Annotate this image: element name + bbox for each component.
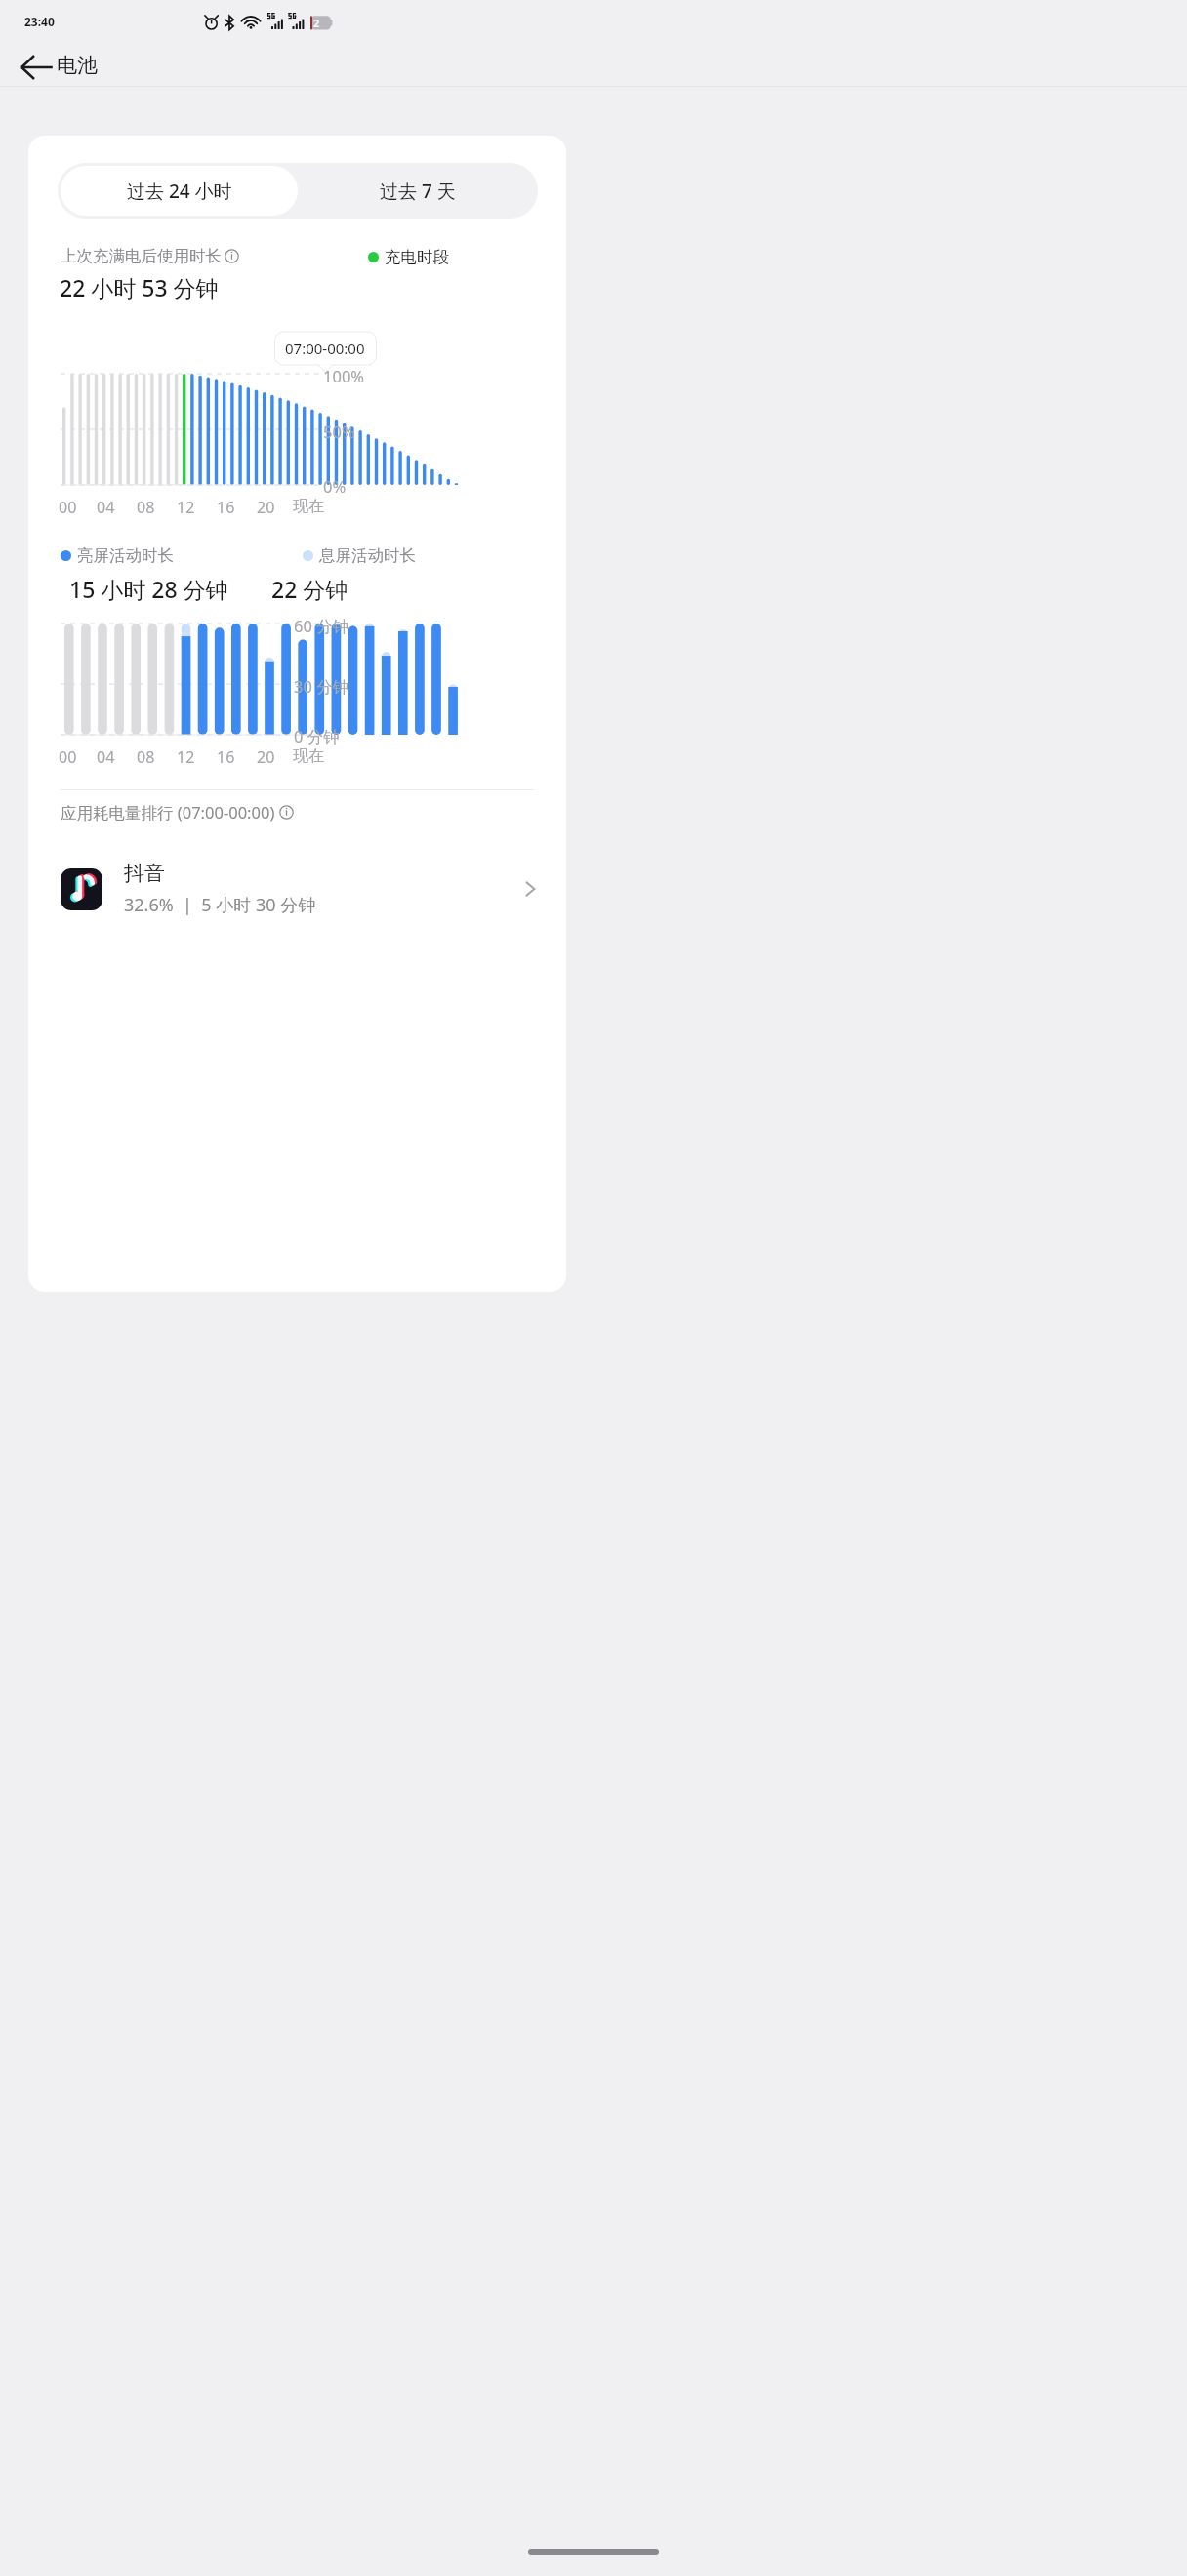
staticText: 50% [323,421,355,442]
staticText: 60 分钟 [294,615,349,637]
staticText: 0 分钟 [294,725,340,747]
staticText: 00 [59,497,77,518]
staticText: 现在 [293,497,324,516]
staticText: 息屏活动时长 [319,545,416,566]
staticText: 07:00-00:00 [285,339,365,358]
staticText: 16 [217,497,235,518]
staticText: 23:40 [24,14,55,29]
staticText: 过去 7 天 [380,179,456,204]
staticText: 电池 [57,53,98,78]
staticText: 20 [257,746,275,768]
staticText: 16 [217,746,235,768]
staticText: 12 [177,497,195,518]
staticText: 100% [323,365,365,386]
staticText: 充电时段 [385,247,449,267]
staticText: 应用耗电量排行 (07:00-00:00) [61,801,275,824]
staticText: 04 [97,497,115,518]
button[interactable]: Back [17,48,56,87]
staticText: 现在 [293,746,324,766]
staticText: 12 [177,746,195,768]
staticText: 亮屏活动时长 [77,545,174,566]
button[interactable]: 抖音 [28,845,566,933]
staticText: 20 [257,497,275,518]
staticText: 2 [313,16,320,30]
staticText: 00 [59,746,77,768]
staticText: 08 [137,746,155,768]
staticText: 0% [323,475,347,497]
staticText: 过去 24 小时 [127,179,232,204]
staticText: 32.6% | 5 小时 30 分钟 [124,893,316,917]
staticText: 上次充满电后使用时长 [61,246,222,266]
button[interactable]: 过去 24 小时 [61,166,298,216]
staticText: 22 小时 53 分钟 [60,272,219,302]
button[interactable]: 过去 7 天 [298,163,538,219]
staticText: 抖音 [124,861,165,886]
staticText: 15 小时 28 分钟 [69,574,228,604]
staticText: 22 分钟 [271,574,348,604]
staticText: 08 [137,497,155,518]
staticText: 30 分钟 [294,675,349,698]
staticText: 04 [97,746,115,768]
